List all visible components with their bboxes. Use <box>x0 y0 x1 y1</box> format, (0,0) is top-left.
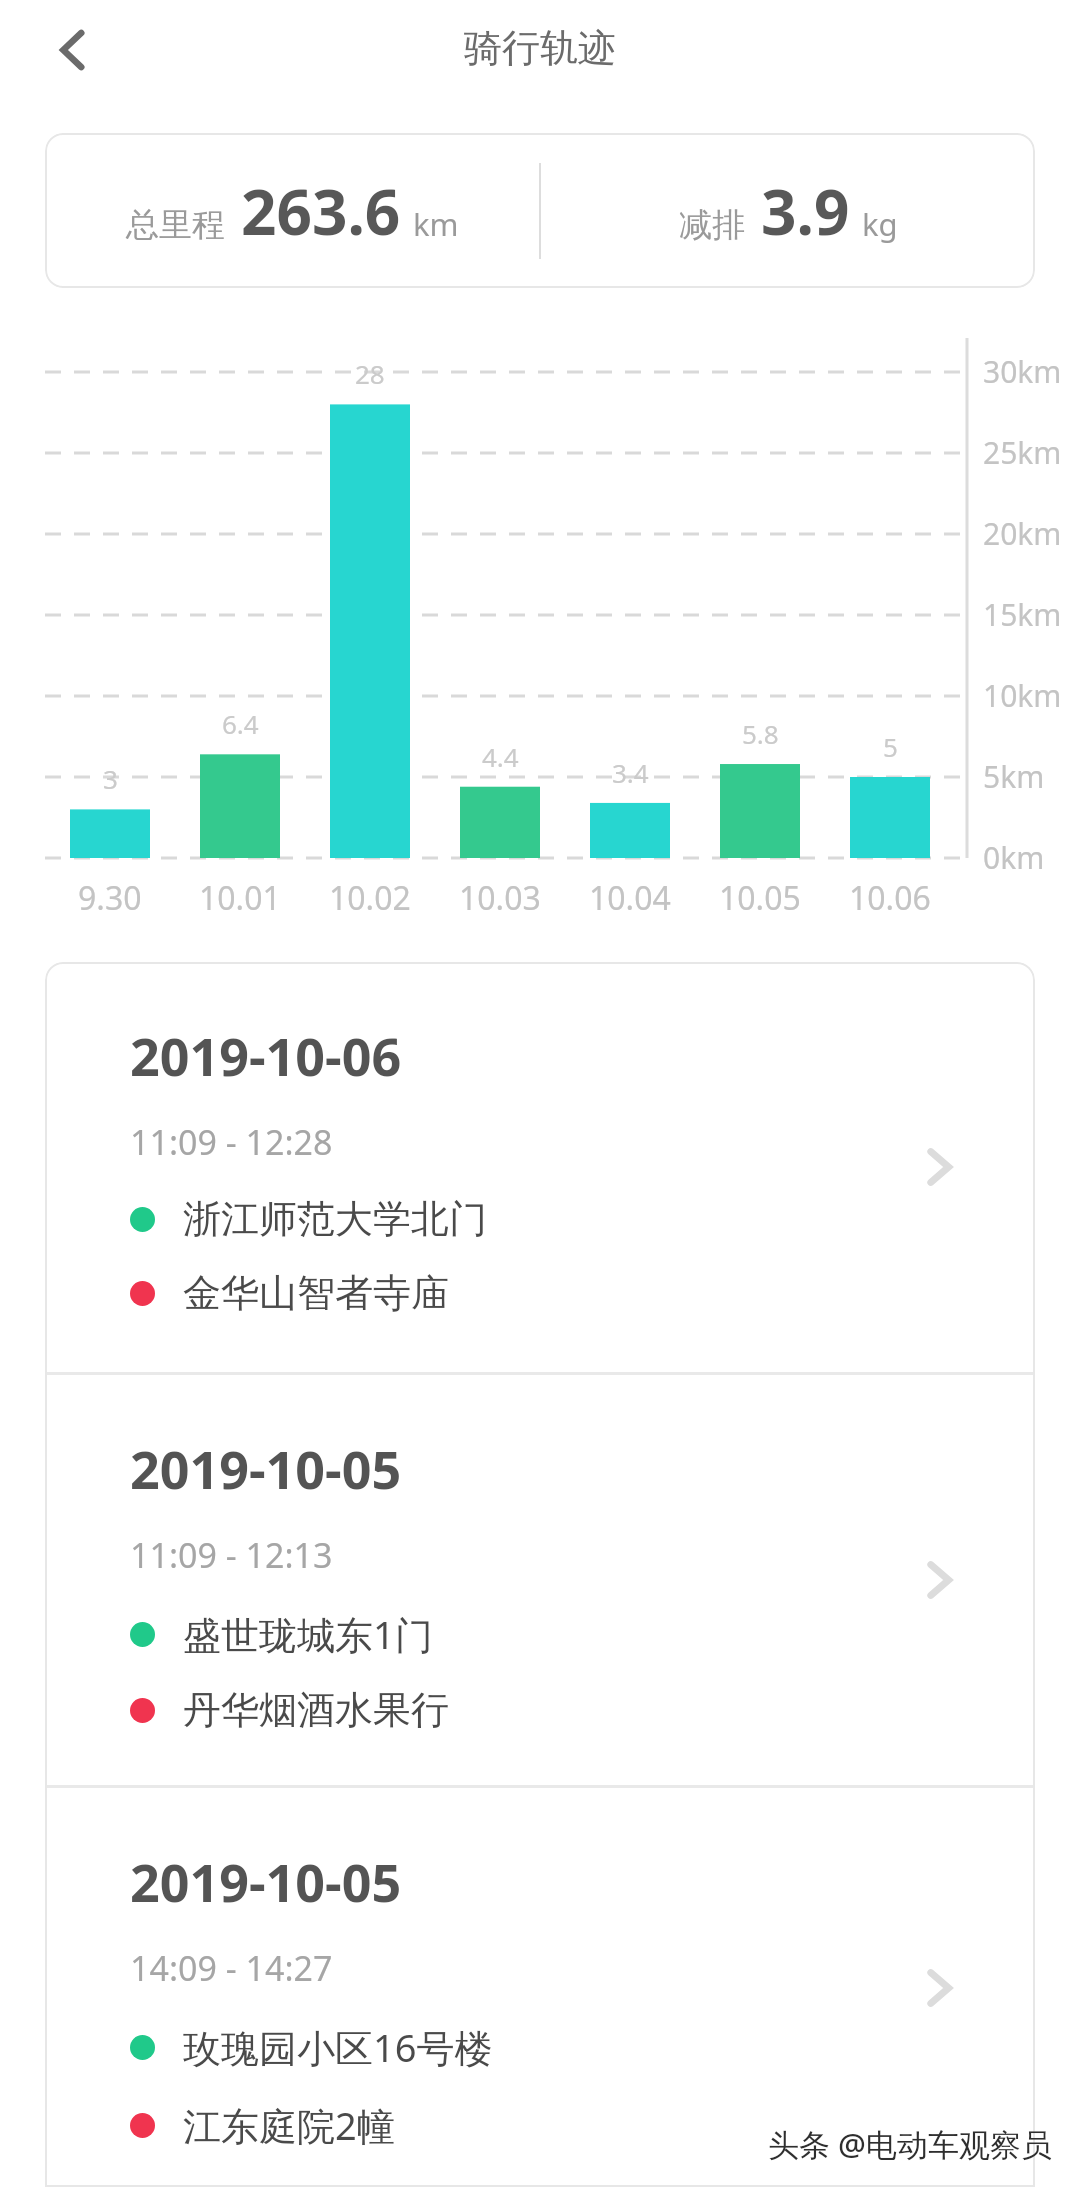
button[interactable]: 总里程 <box>45 133 1035 288</box>
staticText: 10.05 <box>719 876 801 920</box>
staticText: 30km <box>983 351 1062 392</box>
staticText: 金华山智者寺庙 <box>183 1269 449 1317</box>
staticText: 10.06 <box>849 876 931 920</box>
staticText: 3 <box>103 761 118 796</box>
staticText: km <box>413 203 459 245</box>
staticText: 2019-10-06 <box>130 1020 402 1091</box>
staticText: 5.8 <box>742 716 779 751</box>
staticText: 10.03 <box>459 876 541 920</box>
staticText: 浙江师范大学北门 <box>183 1195 487 1243</box>
staticText: 14:09 - 14:27 <box>130 1945 333 1991</box>
staticText: 头条 @电动车观察员 <box>768 2123 1052 2165</box>
staticText: 5 <box>883 729 898 764</box>
staticText: 骑行轨迹 <box>464 24 616 72</box>
staticText: 丹华烟酒水果行 <box>183 1686 449 1734</box>
staticText: 25km <box>983 432 1062 473</box>
staticText: 总里程 <box>126 204 225 246</box>
staticText: 11:09 - 12:13 <box>130 1532 333 1578</box>
staticText: 盛世珑城东1门 <box>183 1608 433 1660</box>
staticText: 减排 <box>679 204 745 246</box>
staticText: 3.4 <box>612 755 649 790</box>
staticText: kg <box>862 203 898 245</box>
button[interactable]: 2019-10-05 <box>45 1788 1035 2187</box>
staticText: 2019-10-05 <box>130 1433 402 1504</box>
staticText: 28 <box>355 356 385 391</box>
staticText: 10.04 <box>589 876 671 920</box>
button[interactable]: 2019-10-06 <box>45 962 1035 1372</box>
staticText: 15km <box>983 594 1062 635</box>
staticText: 10.02 <box>329 876 411 920</box>
button[interactable]: 2019-10-05 <box>45 1375 1035 1785</box>
staticText: 3.9 <box>761 169 850 253</box>
staticText: 9.30 <box>78 876 142 920</box>
staticText: 0km <box>983 837 1045 878</box>
staticText: 11:09 - 12:28 <box>130 1119 333 1165</box>
staticText: 5km <box>983 756 1045 797</box>
staticText: 263.6 <box>241 169 401 253</box>
staticText: 2019-10-05 <box>130 1846 402 1917</box>
staticText: 玫瑰园小区16号楼 <box>183 2021 493 2073</box>
staticText: 10.01 <box>199 876 281 920</box>
staticText: 20km <box>983 513 1062 554</box>
staticText: 6.4 <box>222 706 259 741</box>
staticText: 4.4 <box>482 739 519 774</box>
button[interactable]: Back <box>30 7 116 93</box>
staticText: 10km <box>983 675 1062 716</box>
staticText: 江东庭院2幢 <box>183 2099 395 2151</box>
